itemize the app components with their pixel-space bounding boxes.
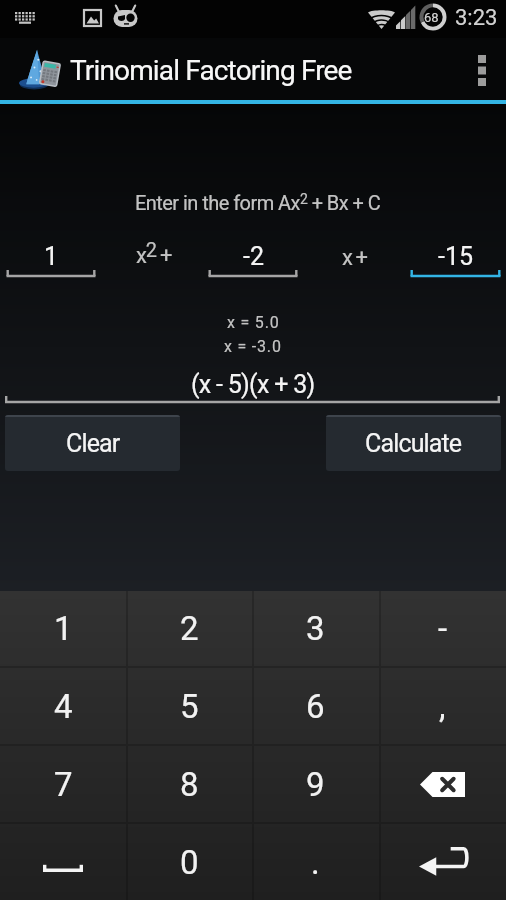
staticText: 3:23: [455, 5, 498, 31]
button[interactable]: 7: [0, 746, 126, 822]
button[interactable]: 4: [0, 668, 126, 744]
staticText: Trinomial Factoring Free: [70, 54, 352, 87]
staticText: 1: [44, 242, 59, 271]
button[interactable]: -15: [410, 238, 501, 280]
staticText: -2: [243, 242, 264, 271]
staticText: x = -3.0: [224, 337, 282, 356]
staticText: x2 +: [136, 238, 172, 269]
staticText: 0: [180, 843, 199, 882]
button[interactable]: .: [252, 824, 379, 900]
button[interactable]: ,: [379, 668, 506, 744]
staticText: -: [438, 609, 448, 648]
staticText: x = 5.0: [227, 313, 280, 332]
button[interactable]: Calculate: [326, 415, 501, 471]
staticText: Clear: [66, 429, 120, 458]
staticText: (x - 5)(x + 3): [191, 370, 315, 399]
staticText: Enter in the form Ax2 + Bx + C: [135, 191, 381, 215]
staticText: 3: [306, 609, 325, 648]
staticText: 2: [180, 609, 199, 648]
button[interactable]: 1: [6, 238, 96, 280]
button[interactable]: 6: [252, 668, 379, 744]
button[interactable]: 5: [126, 668, 252, 744]
staticText: ,: [439, 687, 446, 726]
button[interactable]: 9: [252, 746, 379, 822]
button[interactable]: 2: [126, 591, 252, 666]
button[interactable]: Clear: [5, 415, 180, 471]
staticText: Calculate: [365, 429, 462, 458]
button[interactable]: Space: [0, 824, 126, 900]
staticText: .: [311, 843, 320, 882]
button[interactable]: -: [379, 591, 506, 666]
staticText: 9: [306, 765, 325, 804]
staticText: 5: [180, 687, 199, 726]
button[interactable]: 0: [126, 824, 252, 900]
staticText: 4: [54, 687, 73, 726]
staticText: 7: [54, 765, 73, 804]
staticText: 68: [424, 10, 439, 25]
button[interactable]: More options: [458, 38, 506, 100]
staticText: 8: [180, 765, 199, 804]
staticText: -15: [438, 242, 474, 271]
button[interactable]: 3: [252, 591, 379, 666]
button[interactable]: -2: [208, 238, 298, 280]
button[interactable]: 1: [0, 591, 126, 666]
staticText: 6: [306, 687, 325, 726]
staticText: 1: [54, 609, 73, 648]
button[interactable]: Delete: [379, 746, 506, 822]
staticText: x +: [342, 245, 367, 271]
button[interactable]: Enter: [379, 824, 506, 900]
button[interactable]: 8: [126, 746, 252, 822]
